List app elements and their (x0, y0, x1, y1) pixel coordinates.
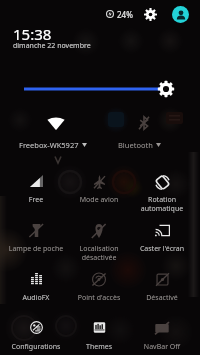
staticText: 15:38 (13, 24, 52, 44)
staticText: 24% (117, 9, 133, 20)
staticText: Caster l'écran (131, 244, 193, 254)
button[interactable]: Mode avion (68, 169, 130, 213)
staticText: Bluetooth (118, 140, 153, 150)
button[interactable]: Bluetooth (100, 108, 194, 158)
button[interactable]: Rotation automatique (131, 169, 193, 213)
staticText: AudioFX (5, 293, 67, 303)
button[interactable]: AudioFX (5, 267, 67, 311)
staticText: Free (5, 195, 67, 205)
button[interactable]: Point d'accès (68, 267, 130, 311)
button[interactable]: Caster l'écran (131, 218, 193, 262)
button[interactable]: User account (172, 6, 189, 23)
staticText: Lampe de poche (5, 244, 67, 254)
button[interactable]: Configurations (5, 317, 67, 353)
button[interactable]: Free (5, 169, 67, 213)
staticText: Désactivé (131, 293, 193, 303)
button[interactable]: Désactivé (131, 267, 193, 311)
button[interactable]: Brightness (0, 78, 200, 100)
button[interactable]: Localisation désactivée (68, 218, 130, 262)
staticText: Freebox-WK5927 (19, 140, 79, 150)
button[interactable]: NavBar Off (131, 317, 193, 353)
staticText: NavBar Off (131, 342, 193, 352)
staticText: Mode avion (68, 195, 130, 205)
staticText: Rotation automatique (131, 195, 193, 213)
button[interactable]: Lampe de poche (5, 218, 67, 262)
button[interactable]: Themes (68, 317, 130, 353)
staticText: Localisation désactivée (68, 244, 130, 262)
staticText: dimanche 22 novembre (13, 41, 91, 51)
button[interactable]: Freebox-WK5927 (6, 108, 100, 158)
staticText: Configurations (5, 342, 67, 352)
staticText: Themes (68, 342, 130, 352)
button[interactable]: Settings (141, 5, 160, 24)
staticText: Point d'accès (68, 293, 130, 303)
